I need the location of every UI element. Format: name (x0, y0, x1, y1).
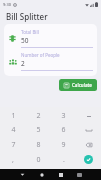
button[interactable]: 5 (26, 123, 51, 137)
button[interactable]: 4 (0, 123, 26, 137)
staticText: 7 (11, 140, 16, 150)
button[interactable]: 0 (26, 152, 51, 167)
button[interactable]: Recents (51, 169, 70, 180)
button[interactable]: space (76, 123, 101, 137)
other: Number of people (8, 57, 17, 66)
button[interactable]: 1 (0, 109, 26, 123)
staticText: Bill Splitter (6, 11, 48, 22)
button[interactable]: Back (13, 169, 32, 180)
staticText: 9 (61, 140, 66, 150)
staticText: . (63, 155, 65, 165)
staticText: Total Bill (21, 29, 39, 35)
staticText: 1 (11, 111, 16, 121)
staticText: 50 (21, 36, 29, 45)
staticText: 6 (61, 125, 66, 135)
staticText: , (12, 155, 14, 165)
other: Total bill amount (8, 34, 17, 43)
staticText: 9:30 (3, 2, 11, 7)
button[interactable]: , (0, 152, 26, 167)
button[interactable]: 8 (26, 137, 51, 152)
button[interactable]: Home (32, 169, 51, 180)
staticText: 8 (36, 140, 41, 150)
button[interactable]: 2 (26, 109, 51, 123)
staticText: 2 (36, 111, 41, 121)
staticText: 5 (36, 125, 41, 135)
button[interactable]: 6 (51, 123, 76, 137)
button[interactable]: Calculate (59, 79, 97, 91)
button[interactable]: 3 (51, 109, 76, 123)
button[interactable]: Number of people (8, 52, 93, 71)
button[interactable]: Keyboard (70, 169, 89, 180)
staticText: 0 (36, 155, 41, 165)
button[interactable]: del (76, 137, 101, 152)
button[interactable]: 9 (51, 137, 76, 152)
staticText: 4 (11, 125, 16, 135)
button[interactable]: ok (76, 152, 101, 167)
button[interactable]: 7 (0, 137, 26, 152)
button[interactable]: Total bill amount (8, 29, 93, 48)
staticText: Calculate (72, 82, 92, 88)
staticText: 2 (21, 59, 25, 68)
staticText: 3 (61, 111, 66, 121)
button[interactable]: dash (76, 109, 101, 123)
staticText: Number of People (21, 52, 60, 58)
